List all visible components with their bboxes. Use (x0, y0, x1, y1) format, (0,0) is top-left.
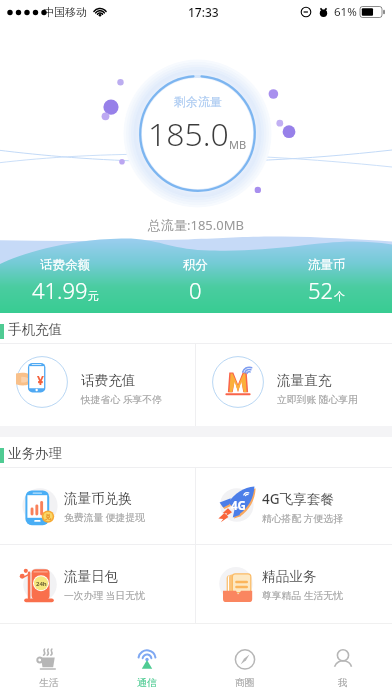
staticText: 积分 (183, 257, 208, 273)
staticText: 商圈 (235, 677, 255, 689)
button[interactable]: 流量币 (261, 248, 392, 313)
staticText: 兑 (45, 513, 51, 521)
button[interactable]: ¥ (0, 344, 195, 426)
staticText: 个 (334, 289, 345, 303)
staticText: 52 (308, 275, 334, 305)
staticText: 精品业务 (262, 568, 317, 585)
staticText: 话费充值 (81, 372, 136, 389)
staticText: 流量币 (308, 257, 346, 273)
staticText: 总流量:185.0MB (148, 216, 244, 234)
staticText: 一次办理 当日无忧 (64, 589, 145, 602)
staticText: 流量日包 (64, 568, 119, 585)
button[interactable]: 生活 (0, 624, 98, 696)
staticText: 生活 (39, 677, 59, 689)
staticText: 话费余额 (40, 257, 90, 273)
staticText: 尊享精品 生活无忧 (262, 589, 343, 602)
staticText: ¥ (37, 372, 44, 388)
staticText: 手机充值 (8, 321, 62, 338)
button[interactable]: 24h (0, 545, 195, 623)
staticText: MB (229, 137, 247, 152)
button[interactable]: 我 (294, 624, 392, 696)
button[interactable]: 4G (196, 468, 392, 544)
staticText: 元 (88, 289, 99, 303)
button[interactable]: 兑 (0, 468, 195, 544)
staticText: 185.0 (148, 112, 229, 156)
button[interactable]: 通信 (98, 624, 196, 696)
button[interactable]: 话费余额 (0, 248, 130, 313)
staticText: 流量直充 (277, 372, 332, 389)
staticText: 41.99 (32, 275, 88, 305)
button[interactable]: 流量直充 (196, 344, 392, 426)
staticText: 24h (36, 580, 47, 588)
staticText: 业务办理 (8, 445, 62, 462)
button[interactable]: 商圈 (196, 624, 294, 696)
button[interactable]: 精品业务 (196, 545, 392, 623)
staticText: 0 (189, 275, 202, 305)
staticText: 中国移动 (43, 5, 87, 19)
staticText: 通信 (137, 677, 157, 689)
staticText: 精心搭配 方便选择 (262, 512, 343, 525)
staticText: 61% (334, 4, 357, 20)
staticText: 免费流量 便捷提现 (64, 511, 145, 524)
staticText: 剩余流量 (174, 94, 222, 109)
staticText: 立即到账 随心享用 (277, 393, 358, 406)
staticText: 我 (338, 677, 348, 689)
staticText: 17:33 (188, 4, 219, 20)
button[interactable]: 积分 (130, 248, 261, 313)
staticText: 流量币兑换 (64, 490, 132, 507)
staticText: 快捷省心 乐享不停 (81, 393, 162, 406)
staticText: 4G飞享套餐 (262, 489, 335, 508)
staticText: 4G (231, 498, 246, 514)
